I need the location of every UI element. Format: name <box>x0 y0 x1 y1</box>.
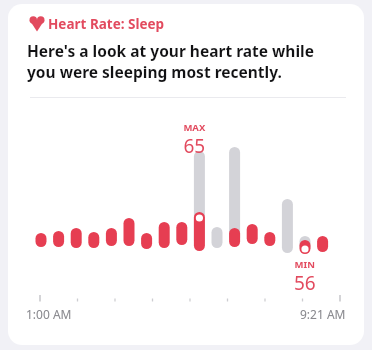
button[interactable] <box>0 0 372 350</box>
